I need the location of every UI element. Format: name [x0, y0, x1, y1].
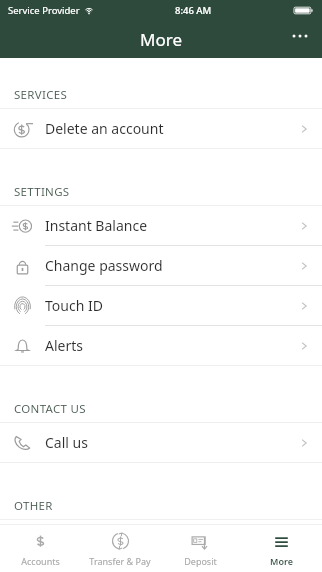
button[interactable]: Transfer & Pay [80, 525, 160, 572]
button[interactable]: Delete an account [0, 109, 322, 148]
staticText: More [140, 28, 182, 51]
staticText: Accounts [21, 555, 60, 567]
staticText: Alerts [45, 336, 83, 355]
staticText: Deposit [184, 555, 217, 567]
staticText: Call us [45, 433, 88, 452]
button[interactable]: Accounts [0, 525, 80, 572]
staticText: Touch ID [45, 296, 103, 315]
button[interactable]: Change password [0, 246, 322, 285]
button[interactable]: Call us [0, 423, 322, 462]
staticText: CONTACT US [14, 401, 86, 417]
staticText: SETTINGS [14, 184, 70, 200]
staticText: SERVICES [14, 87, 68, 103]
button[interactable]: Instant Balance [0, 206, 322, 245]
staticText: Delete an account [45, 119, 164, 138]
button[interactable]: Alerts [0, 326, 322, 365]
staticText: More [270, 555, 293, 567]
button[interactable]: More options [287, 23, 313, 49]
staticText: Transfer & Pay [89, 555, 151, 567]
staticText: Instant Balance [45, 216, 148, 235]
staticText: Service Provider [8, 4, 80, 17]
button[interactable]: Deposit [160, 525, 241, 572]
staticText: 8:46 AM [175, 4, 212, 17]
staticText: Change password [45, 256, 163, 275]
button[interactable]: More [241, 525, 322, 572]
staticText: OTHER [14, 498, 53, 514]
button[interactable]: Touch ID [0, 286, 322, 325]
